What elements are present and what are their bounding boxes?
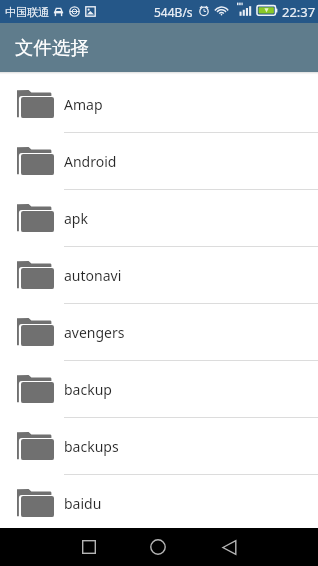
staticText: backup xyxy=(64,380,112,399)
staticText: Android xyxy=(64,152,117,171)
button[interactable]: Android xyxy=(0,133,318,190)
button[interactable]: autonavi xyxy=(0,247,318,304)
button[interactable]: backups xyxy=(0,418,318,475)
staticText: backups xyxy=(64,437,119,456)
button[interactable]: Home xyxy=(138,528,178,566)
staticText: apk xyxy=(64,209,88,228)
button[interactable]: Amap xyxy=(0,76,318,133)
staticText: avengers xyxy=(64,323,125,342)
staticText: baidu xyxy=(64,494,102,513)
staticText: 文件选择 xyxy=(15,36,89,59)
staticText: 544B/s xyxy=(154,4,193,20)
button[interactable]: Back xyxy=(209,528,249,566)
staticText: 22:37 xyxy=(282,3,316,21)
staticText: autonavi xyxy=(64,266,122,285)
button[interactable]: apk xyxy=(0,190,318,247)
button[interactable]: baidu xyxy=(0,475,318,528)
button[interactable]: backup xyxy=(0,361,318,418)
button[interactable]: avengers xyxy=(0,304,318,361)
button[interactable]: Recent apps xyxy=(69,528,109,566)
staticText: Amap xyxy=(64,95,103,114)
staticText: 中国联通 xyxy=(5,5,49,19)
